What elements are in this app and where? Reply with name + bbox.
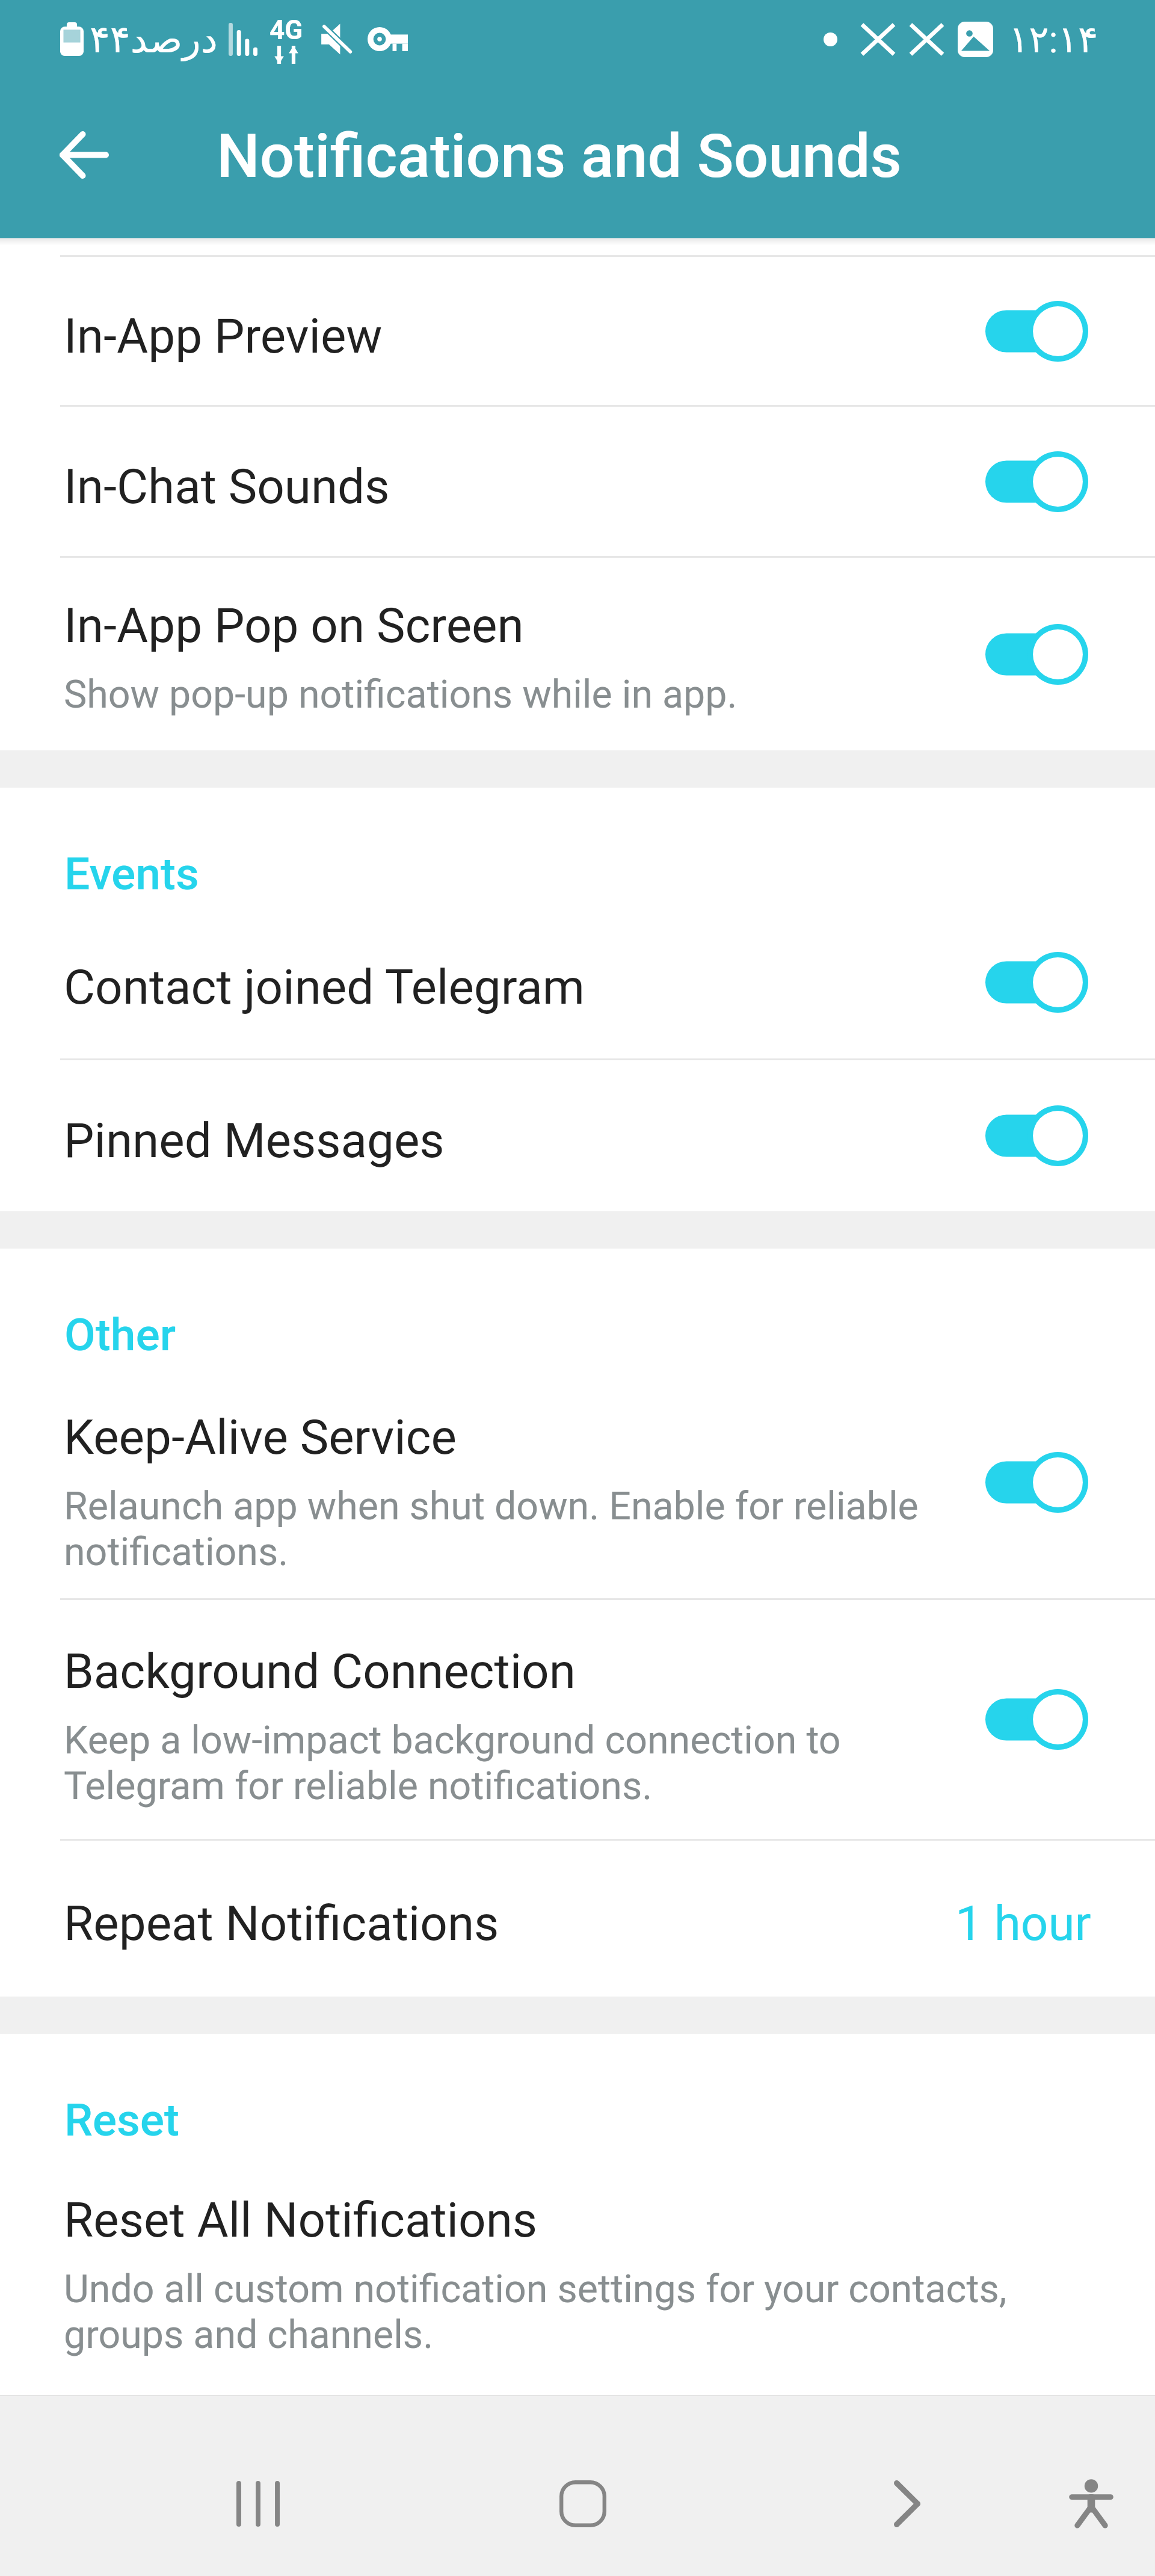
staticText: Undo all custom notification settings fo… xyxy=(64,2266,1007,2312)
button[interactable]: In-App Preview xyxy=(0,257,1155,405)
staticText: ۱۲:۱۴ xyxy=(1009,17,1098,61)
staticText: ۴۴درصد xyxy=(90,17,218,61)
staticText: Other xyxy=(64,1308,176,1361)
staticText: notifications. xyxy=(64,1529,289,1575)
staticText: In-App Pop on Screen xyxy=(64,598,524,654)
button[interactable]: Accessibility xyxy=(1043,2456,1139,2552)
staticText: Events xyxy=(64,847,199,900)
button[interactable]: Home xyxy=(535,2456,631,2552)
staticText: In-App Preview xyxy=(64,308,383,365)
button[interactable]: Repeat Notifications xyxy=(0,1841,1155,1997)
staticText: groups and channels. xyxy=(64,2312,434,2358)
staticText: Reset xyxy=(64,2093,180,2146)
staticText: Relaunch app when shut down. Enable for … xyxy=(64,1483,919,1529)
staticText: 4G xyxy=(269,14,303,46)
staticText: In-Chat Sounds xyxy=(64,459,390,515)
button[interactable]: Keep-Alive Service xyxy=(0,1367,1155,1598)
staticText: Contact joined Telegram xyxy=(64,959,585,1016)
button[interactable]: Recent apps xyxy=(210,2456,306,2552)
button[interactable]: Back xyxy=(859,2456,955,2552)
staticText: Notifications and Sounds xyxy=(217,120,902,191)
staticText: Repeat Notifications xyxy=(64,1895,499,1952)
staticText: Reset All Notifications xyxy=(64,2192,538,2249)
staticText: Keep a low-impact background connection … xyxy=(64,1717,841,1763)
button[interactable]: In-Chat Sounds xyxy=(0,407,1155,556)
staticText: Background Connection xyxy=(64,1643,576,1700)
staticText: Telegram for reliable notifications. xyxy=(64,1763,653,1809)
button[interactable]: Contact joined Telegram xyxy=(0,906,1155,1058)
button[interactable]: Background Connection xyxy=(0,1600,1155,1839)
staticText: Pinned Messages xyxy=(64,1113,445,1169)
button[interactable]: Pinned Messages xyxy=(0,1060,1155,1211)
button[interactable]: Back xyxy=(44,114,125,195)
staticText: Show pop-up notifications while in app. xyxy=(64,672,738,717)
button[interactable]: In-App Pop on Screen xyxy=(0,558,1155,750)
staticText: 1 hour xyxy=(955,1895,1091,1952)
staticText: Keep-Alive Service xyxy=(64,1409,457,1466)
button[interactable]: Reset All Notifications xyxy=(0,2152,1155,2395)
